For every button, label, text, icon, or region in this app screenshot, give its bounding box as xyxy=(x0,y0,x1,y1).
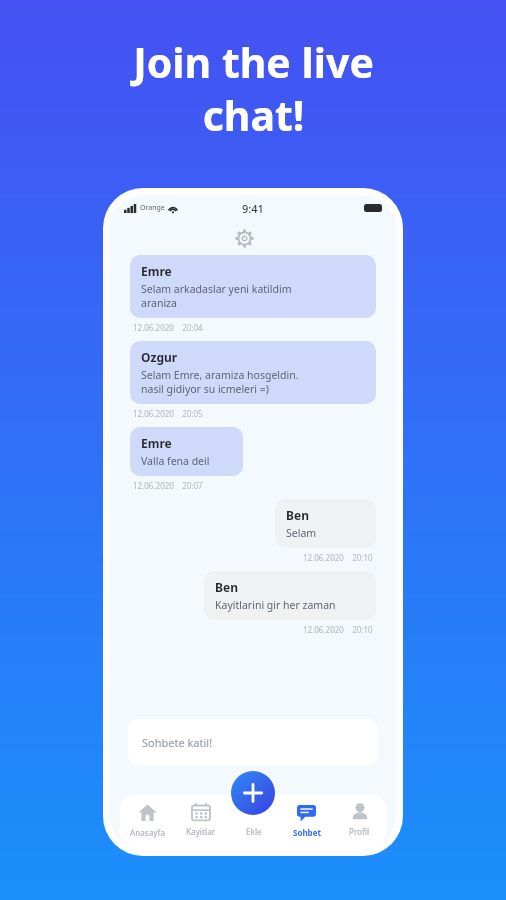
staticText: Selam xyxy=(286,526,317,540)
staticText: Sohbet xyxy=(293,827,321,838)
button[interactable]: Profil xyxy=(333,795,386,849)
staticText: Kayitlar xyxy=(186,826,216,837)
staticText: Ekle xyxy=(246,826,262,837)
button[interactable]: Settings xyxy=(229,223,259,253)
staticText: Emre xyxy=(141,263,172,279)
staticText: Valla fena deil xyxy=(141,454,210,468)
staticText: Anasayfa xyxy=(130,827,165,838)
staticText: 9:41 xyxy=(242,201,264,216)
staticText: Sohbete katil! xyxy=(142,735,213,750)
staticText: 12.06.2020 20:10 xyxy=(303,624,373,635)
staticText: 12.06.2020 20:10 xyxy=(303,552,373,563)
button[interactable]: Ozgur xyxy=(130,341,376,404)
staticText: Selam Emre, aramiza hosgeldin. nasil gid… xyxy=(141,368,299,396)
staticText: 12.06.2020 20:07 xyxy=(133,480,203,491)
button[interactable]: Sohbete katil! xyxy=(128,719,378,765)
staticText: Ben xyxy=(286,507,309,523)
staticText: Orange xyxy=(140,203,165,213)
staticText: Join the live chat! xyxy=(133,34,374,143)
button[interactable]: Emre xyxy=(130,255,376,318)
button[interactable]: Ekle xyxy=(231,771,275,815)
button[interactable]: Kayitlar xyxy=(174,795,227,849)
button[interactable]: Ekle xyxy=(227,795,280,849)
staticText: Selam arkadaslar yeni katildim araniza xyxy=(141,282,292,310)
staticText: Emre xyxy=(141,435,172,451)
button[interactable]: Anasayfa xyxy=(120,795,174,849)
staticText: Ben xyxy=(215,579,238,595)
staticText: Profil xyxy=(349,826,370,837)
staticText: 12.06.2020 20:04 xyxy=(133,322,203,333)
staticText: Kayitlarini gir her zaman xyxy=(215,598,336,612)
button[interactable]: Sohbet xyxy=(280,795,333,849)
button[interactable]: Emre xyxy=(130,427,243,476)
button[interactable]: Ben xyxy=(204,571,376,620)
button[interactable]: Ben xyxy=(275,499,376,548)
staticText: 12.06.2020 20:05 xyxy=(133,408,203,419)
staticText: Ozgur xyxy=(141,349,178,365)
